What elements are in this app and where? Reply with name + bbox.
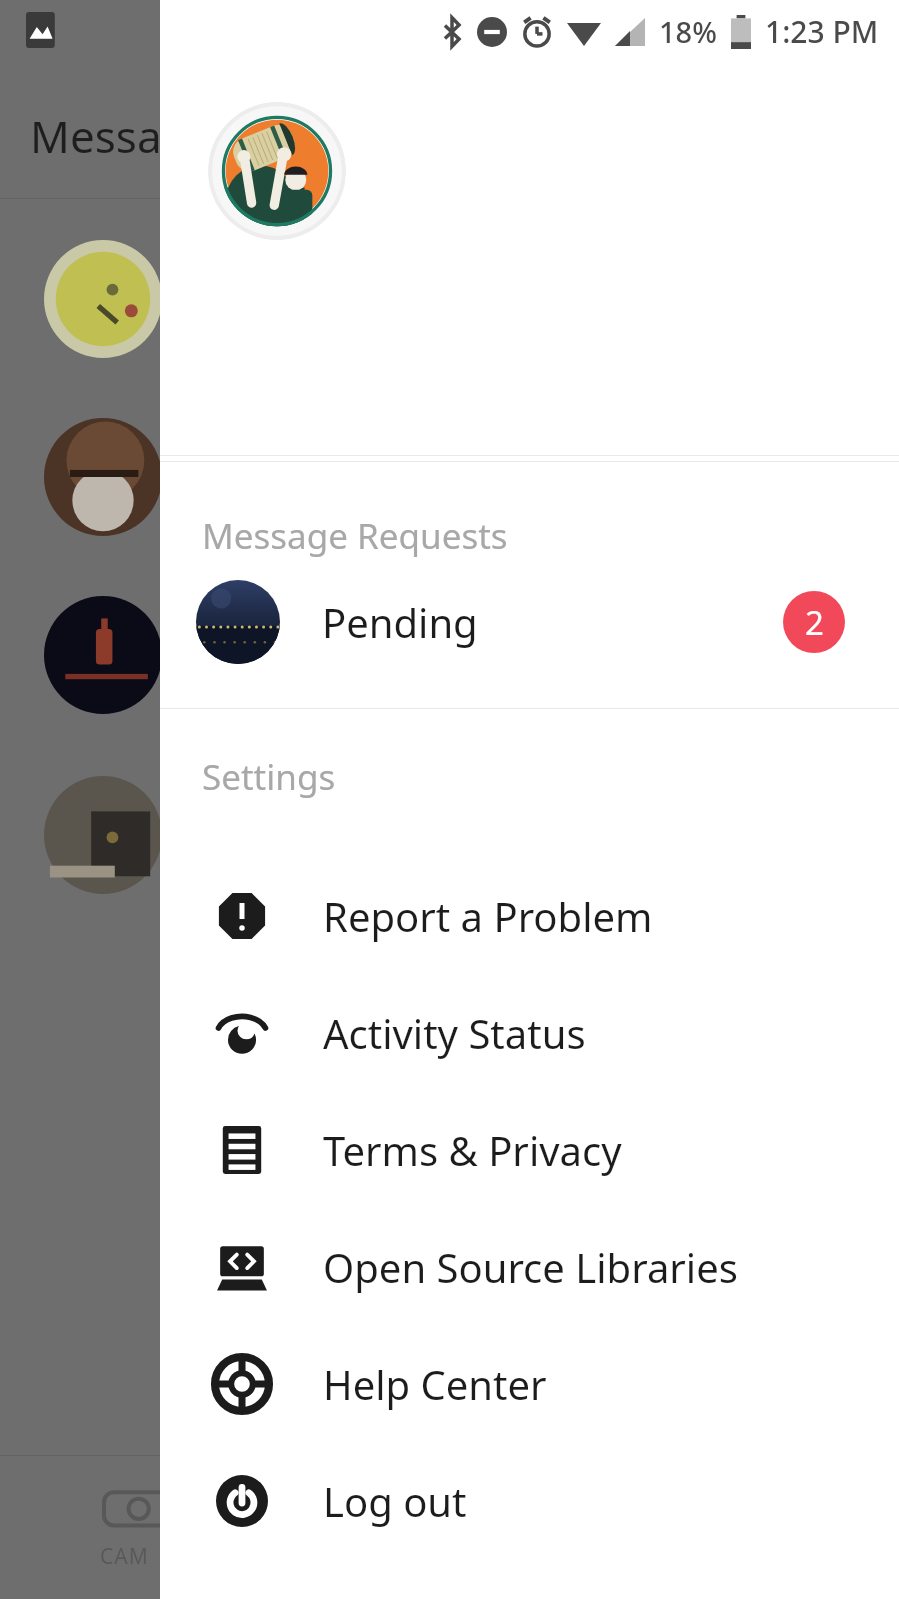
staticText: Report a Problem — [323, 889, 653, 943]
button[interactable]: Pending — [160, 560, 899, 684]
staticText: Help Center — [323, 1357, 547, 1411]
staticText: 1:23 PM — [765, 11, 879, 52]
staticText: Activity Status — [323, 1006, 586, 1060]
button[interactable]: Open Source Libraries — [160, 1208, 899, 1325]
button[interactable]: Activity Status — [160, 974, 899, 1091]
staticText: Open Source Libraries — [323, 1240, 738, 1294]
staticText: Settings — [202, 753, 336, 801]
staticText: Message Requests — [202, 512, 508, 560]
staticText: 18% — [659, 12, 717, 51]
staticText: Terms & Privacy — [323, 1123, 622, 1177]
button[interactable]: Log out — [160, 1442, 899, 1559]
staticText: Log out — [323, 1474, 467, 1528]
staticText: 2 — [805, 600, 824, 645]
button[interactable]: Help Center — [160, 1325, 899, 1442]
staticText: Pending — [322, 595, 478, 649]
button[interactable]: Profile — [208, 102, 346, 240]
staticText: Messa — [30, 106, 162, 166]
button[interactable]: Report a Problem — [160, 857, 899, 974]
button[interactable]: Terms & Privacy — [160, 1091, 899, 1208]
staticText: CAM — [100, 1542, 149, 1571]
